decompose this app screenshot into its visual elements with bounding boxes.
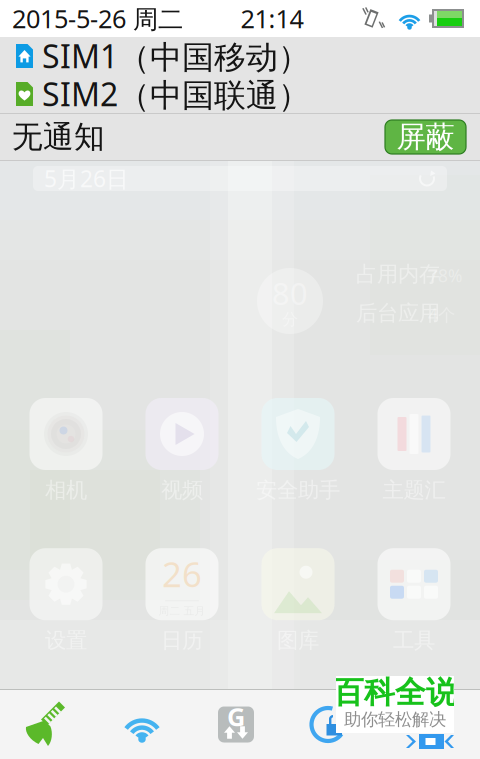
staticText: 百科全说: [333, 674, 457, 711]
staticText: 占用内存: [356, 261, 440, 287]
staticText: 2015-5-26 周二: [12, 2, 183, 35]
button[interactable]: 图库: [240, 548, 356, 653]
staticText: 安全助手: [256, 477, 340, 503]
staticText: 工具: [393, 627, 435, 653]
staticText: 屏蔽: [396, 119, 454, 155]
staticText: 视频: [161, 477, 203, 503]
staticText: 后台应用: [356, 300, 440, 326]
staticText: SIM1（中国移动）: [42, 35, 310, 77]
staticText: 21:14: [240, 2, 303, 35]
staticText: 日历: [161, 627, 203, 653]
button[interactable]: 一键清理: [11, 690, 83, 759]
button[interactable]: 屏蔽: [385, 120, 466, 154]
staticText: 图库: [277, 627, 319, 653]
button[interactable]: 视频: [124, 398, 240, 503]
button[interactable]: 相机: [8, 398, 124, 503]
staticText: 26: [162, 551, 202, 597]
button[interactable]: 安全助手: [240, 398, 356, 503]
button[interactable]: 工具: [356, 548, 472, 653]
staticText: 相机: [45, 477, 87, 503]
button[interactable]: 数据流量: [200, 690, 272, 759]
staticText: 主题汇: [382, 477, 445, 503]
staticText: SIM2（中国联通）: [42, 73, 310, 115]
staticText: 无通知: [12, 118, 105, 156]
button[interactable]: 设置: [8, 548, 124, 653]
button[interactable]: 26: [124, 548, 240, 653]
staticText: G: [227, 700, 245, 733]
staticText: 助你轻松解决: [344, 709, 446, 730]
staticText: 5月26日: [44, 163, 129, 193]
button[interactable]: 主题汇: [356, 398, 472, 503]
staticText: 78%: [428, 264, 462, 287]
button[interactable]: 安全中心: [294, 690, 366, 759]
staticText: 4个: [428, 303, 455, 326]
staticText: 设置: [45, 627, 87, 653]
button[interactable]: WLAN: [106, 690, 178, 759]
